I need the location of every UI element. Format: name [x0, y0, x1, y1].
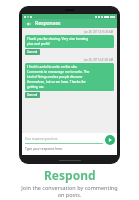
- staticText: themselves, but so we have. Thanks for: [27, 80, 86, 84]
- button[interactable]: I find it useful to write on the site.: [25, 63, 114, 91]
- button[interactable]: Send: [105, 135, 115, 145]
- button[interactable]: Back: [25, 20, 32, 27]
- staticText: Respond: [44, 167, 96, 183]
- staticText: Type your response here.: [25, 147, 63, 151]
- staticText: Jun 28, 2017 4:21:02 AM: [84, 58, 114, 62]
- staticText: kind of things makes people discover: [27, 75, 83, 79]
- button[interactable]: Your response goes here: [25, 137, 103, 144]
- staticText: General: [27, 93, 38, 97]
- staticText: Jun 28, 2017 4:16:30 AM: [84, 30, 114, 34]
- staticText: Responses: [35, 20, 61, 27]
- staticText: plus and profit!: [27, 42, 50, 46]
- staticText: I find it useful to write on the site.: [27, 65, 78, 69]
- staticText: getting me.: [27, 85, 45, 89]
- staticText: Your response goes here: [25, 137, 58, 141]
- button[interactable]: General: [25, 49, 40, 55]
- staticText: Join the conversation by commenting on p…: [20, 184, 119, 198]
- button[interactable]: General: [25, 92, 40, 98]
- button[interactable]: Thank you for sharing. Very nice brewing: [25, 35, 114, 48]
- staticText: General: [27, 50, 38, 54]
- staticText: Thank you for sharing. Very nice brewing: [27, 37, 89, 41]
- staticText: Comments to encourage me to write. The: [27, 70, 90, 74]
